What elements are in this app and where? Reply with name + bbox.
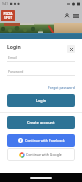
button[interactable]: Password xyxy=(7,68,75,76)
button[interactable]: Email xyxy=(7,54,75,62)
staticText: Login xyxy=(36,98,47,103)
button[interactable]: PIZZA SPOT xyxy=(1,10,15,21)
staticText: Continue with Google xyxy=(26,152,62,157)
button[interactable]: Forgot password xyxy=(48,84,75,90)
staticText: 9:41 xyxy=(2,2,8,6)
staticText: f xyxy=(20,138,22,143)
button[interactable]: Close xyxy=(67,45,75,53)
staticText: PIZZA SPOT xyxy=(3,12,13,20)
staticText: Create account xyxy=(27,120,55,125)
staticText: Password xyxy=(8,69,24,74)
button[interactable]: Create account xyxy=(7,116,75,129)
button[interactable]: Account xyxy=(63,12,71,20)
button[interactable]: Login xyxy=(7,94,75,107)
button[interactable]: Continue with Google xyxy=(7,148,75,161)
button[interactable]: f xyxy=(7,134,75,147)
staticText: Login xyxy=(7,44,21,51)
staticText: Forgot password xyxy=(48,85,75,90)
staticText: Email xyxy=(8,55,17,60)
staticText: Continue with Facebook xyxy=(25,138,65,143)
button[interactable]: Menu xyxy=(72,12,80,20)
